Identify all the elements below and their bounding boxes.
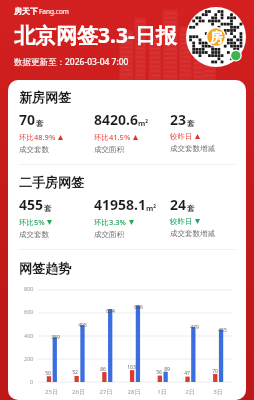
button[interactable]: 8420.6 — [94, 110, 170, 154]
staticText: 86 — [100, 366, 106, 373]
staticText: 103 — [127, 364, 136, 371]
staticText: 56 — [156, 369, 162, 376]
staticText: 成交套数 — [19, 230, 49, 239]
button[interactable]: 41958.1 — [94, 195, 170, 239]
staticText: 1日 — [148, 388, 176, 396]
staticText: m² — [138, 118, 149, 128]
staticText: 24 — [170, 195, 187, 214]
staticText: 70 — [212, 368, 218, 375]
staticText: 455 — [218, 327, 227, 334]
staticText: 套 — [187, 119, 195, 128]
staticText: 房天下 — [14, 6, 38, 16]
staticText: 600 — [24, 308, 34, 315]
staticText: 套 — [44, 204, 52, 213]
staticText: 成交面积 — [94, 145, 124, 154]
staticText: 成交面积 — [94, 230, 124, 239]
staticText: 房 — [210, 29, 223, 45]
button[interactable]: 扫码二维码 — [186, 7, 246, 67]
staticText: 479 — [190, 324, 199, 331]
staticText: 二手房网签 — [19, 174, 84, 190]
staticText: 成交套数增减 — [170, 144, 215, 153]
button[interactable]: 70 — [19, 110, 94, 154]
staticText: 389 — [51, 334, 60, 341]
staticText: 2日 — [176, 388, 204, 396]
staticText: 52 — [72, 369, 78, 376]
staticText: 新房网签 — [19, 89, 71, 105]
staticText: 环比41.5% — [94, 132, 131, 142]
staticText: 网签趋势 — [19, 260, 71, 276]
staticText: 较昨日 — [170, 217, 193, 226]
staticText: 634 — [106, 308, 115, 315]
staticText: 70 — [19, 110, 36, 129]
staticText: 50 — [45, 370, 51, 377]
staticText: Fang.com — [39, 7, 69, 16]
staticText: 3日 — [204, 388, 232, 396]
staticText: 环比3.3% — [94, 217, 127, 227]
staticText: 666 — [134, 304, 143, 311]
staticText: 较昨日 — [170, 132, 193, 141]
staticText: 套 — [36, 119, 44, 128]
staticText: 23 — [170, 110, 187, 129]
button[interactable]: 24 — [170, 195, 240, 238]
staticText: 成交套数增减 — [170, 229, 215, 238]
staticText: 400 — [24, 332, 34, 339]
staticText: 环比48.9% — [19, 132, 56, 142]
staticText: 0 — [30, 378, 34, 385]
staticText: 套 — [187, 204, 195, 213]
staticText: 28日 — [120, 388, 148, 396]
button[interactable]: 455 — [19, 195, 94, 239]
staticText: 41958.1 — [94, 195, 146, 214]
staticText: 26日 — [65, 388, 92, 396]
staticText: 455 — [19, 195, 44, 214]
staticText: 495 — [78, 322, 87, 329]
staticText: m² — [146, 203, 157, 213]
staticText: 环比5% — [19, 217, 45, 227]
button[interactable]: 23 — [170, 110, 240, 153]
staticText: 200 — [24, 355, 34, 362]
staticText: 27日 — [92, 388, 120, 396]
staticText: 47 — [184, 370, 190, 377]
staticText: 89 — [164, 366, 170, 373]
staticText: 25日 — [38, 388, 65, 396]
staticText: 800 — [24, 285, 34, 292]
staticText: 北京网签3.3-日报 — [14, 21, 177, 50]
staticText: 8420.6 — [94, 110, 138, 129]
staticText: 数据更新至：2026-03-04 7:00 — [14, 56, 129, 68]
staticText: 成交套数 — [19, 145, 49, 154]
